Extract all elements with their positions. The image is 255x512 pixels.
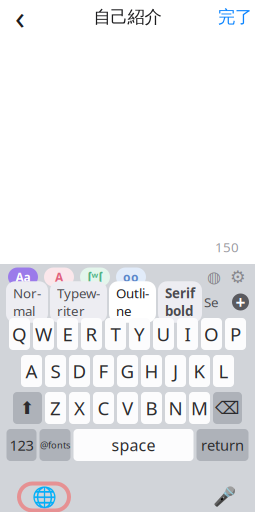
staticText: F [98,359,108,383]
button[interactable]: N [165,392,186,424]
staticText: ⌫ [215,398,240,418]
staticText: ʃʷʃ [87,269,102,285]
staticText: W [35,322,52,346]
button[interactable]: W [33,318,54,350]
button[interactable]: B [141,392,162,424]
staticText: 完了 [218,6,252,28]
staticText: T [110,322,120,346]
staticText: Se [204,293,219,311]
staticText: E [62,322,72,346]
button[interactable]: K [189,355,210,387]
staticText: 150 [215,238,239,256]
button[interactable]: Back [0,0,40,34]
button[interactable]: 123 [6,429,36,461]
staticText: ⬆ [20,398,35,418]
staticText: I [184,322,190,346]
staticText: 🎤 [212,486,235,508]
staticText: Serif bold [165,284,195,320]
button[interactable]: Text style A [44,267,74,286]
staticText: 123 [9,435,33,455]
button[interactable]: Text style ʃʷʃ [80,267,110,286]
staticText: Outline [116,284,149,320]
button[interactable]: Add font [232,293,249,310]
button[interactable]: Text style oo [116,267,146,286]
button[interactable]: return [196,429,248,461]
staticText: return [201,435,244,455]
staticText: J [173,359,178,383]
button[interactable]: Normal [6,281,48,323]
staticText: + [235,290,245,313]
staticText: Normal [13,284,41,320]
button[interactable]: I [177,318,198,350]
staticText: oo [123,269,139,285]
staticText: Aa [15,269,30,285]
staticText: N [168,396,182,420]
staticText: Z [50,396,61,420]
button[interactable]: 完了 [215,0,255,34]
staticText: B [145,396,157,420]
button[interactable]: C [93,392,114,424]
button[interactable]: Typewriter [50,281,107,323]
button[interactable]: M [189,392,210,424]
button[interactable]: T [105,318,126,350]
staticText: ‹ [15,0,25,38]
staticText: X [74,396,85,420]
staticText: K [193,359,205,383]
button[interactable]: F [93,355,114,387]
button[interactable]: L [213,355,234,387]
button[interactable]: Serif bold [158,281,202,323]
staticText: S [50,359,60,383]
button[interactable]: space [73,429,193,461]
staticText: L [218,359,228,383]
staticText: A [55,269,63,285]
staticText: A [25,359,37,383]
button[interactable]: Y [129,318,150,350]
button[interactable]: O [201,318,222,350]
button[interactable]: P [225,318,246,350]
staticText: Y [134,322,145,346]
staticText: M [191,396,208,420]
staticText: U [156,322,170,346]
button[interactable]: D [69,355,90,387]
button[interactable]: S [45,355,66,387]
staticText: Typewriter [57,284,100,320]
staticText: 🌐 [31,486,56,508]
button[interactable]: E [57,318,78,350]
staticText: ⚙ [230,267,246,287]
button[interactable]: Dictation [207,484,241,510]
button[interactable]: Settings [229,268,247,286]
button[interactable]: A [21,355,42,387]
staticText: C [97,396,109,420]
button[interactable]: H [141,355,162,387]
staticText: G [120,359,134,383]
button[interactable]: Next keyboard [27,484,61,510]
staticText: D [72,359,86,383]
button[interactable]: G [117,355,138,387]
button[interactable]: Q [9,318,30,350]
staticText: space [111,434,155,456]
button[interactable]: Delete [213,392,242,424]
button[interactable]: Colors [205,268,223,286]
staticText: V [122,396,133,420]
button[interactable]: R [81,318,102,350]
button[interactable]: @fonts [39,429,70,461]
staticText: H [144,359,158,383]
staticText: Q [12,322,27,346]
button[interactable]: J [165,355,186,387]
button[interactable]: Outline [109,281,156,323]
button[interactable]: X [69,392,90,424]
staticText: 自己紹介 [93,6,161,28]
button[interactable]: Shift [13,392,42,424]
staticText: P [230,322,241,346]
staticText: R [85,322,97,346]
button[interactable]: V [117,392,138,424]
staticText: O [204,322,219,346]
staticText: @fonts [40,439,70,451]
button[interactable]: Z [45,392,66,424]
button[interactable]: U [153,318,174,350]
button[interactable]: Text style Aa [8,267,38,286]
staticText: ◍ [207,268,221,286]
